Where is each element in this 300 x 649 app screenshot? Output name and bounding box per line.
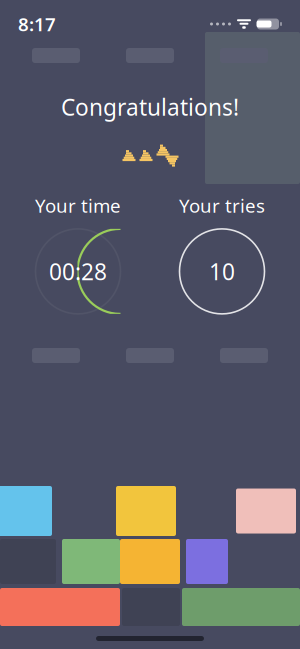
button[interactable]: Your time — [18, 193, 138, 314]
staticText: 00:28 — [49, 256, 107, 286]
staticText: 8:17 — [18, 12, 56, 36]
button[interactable]: Your tries — [162, 193, 282, 314]
staticText: Your tries — [179, 193, 265, 218]
staticText: Congratulations! — [61, 92, 239, 122]
staticText: Your time — [35, 193, 121, 218]
staticText: 10 — [209, 256, 235, 286]
